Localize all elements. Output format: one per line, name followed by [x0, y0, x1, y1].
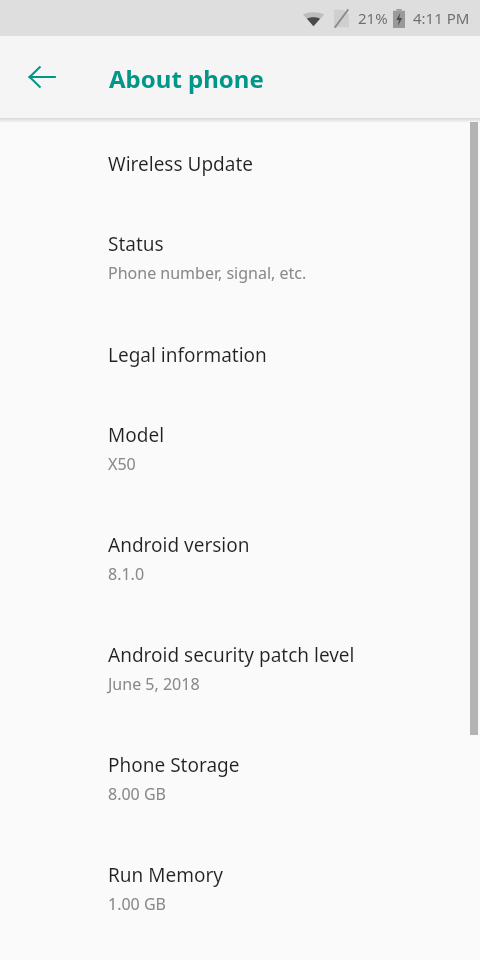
button[interactable]: Back — [18, 53, 66, 101]
staticText: June 5, 2018 — [108, 673, 200, 695]
button[interactable]: Status — [0, 204, 480, 314]
staticText: Android version — [108, 532, 250, 558]
staticText: Phone Storage — [108, 752, 240, 778]
button[interactable]: Android version — [0, 505, 480, 615]
staticText: 8.1.0 — [108, 563, 145, 585]
staticText: Phone number, signal, etc. — [108, 262, 307, 284]
staticText: Android security patch level — [108, 642, 355, 668]
staticText: 21% — [358, 8, 388, 28]
staticText: Wireless Update — [108, 151, 254, 177]
staticText: 1.00 GB — [108, 893, 166, 915]
button[interactable]: Wireless Update — [0, 123, 480, 204]
button[interactable]: Phone Storage — [0, 725, 480, 835]
staticText: X50 — [108, 453, 136, 475]
staticText: 8.00 GB — [108, 783, 166, 805]
button[interactable]: Legal information — [0, 314, 480, 395]
staticText: Legal information — [108, 342, 267, 368]
staticText: Model — [108, 422, 165, 448]
button[interactable]: Android security patch level — [0, 615, 480, 725]
staticText: About phone — [109, 62, 264, 95]
staticText: 4:11 PM — [413, 8, 470, 28]
button[interactable]: Model — [0, 395, 480, 505]
button[interactable]: Run Memory — [0, 835, 480, 945]
staticText: Run Memory — [108, 862, 223, 888]
staticText: Status — [108, 231, 164, 257]
